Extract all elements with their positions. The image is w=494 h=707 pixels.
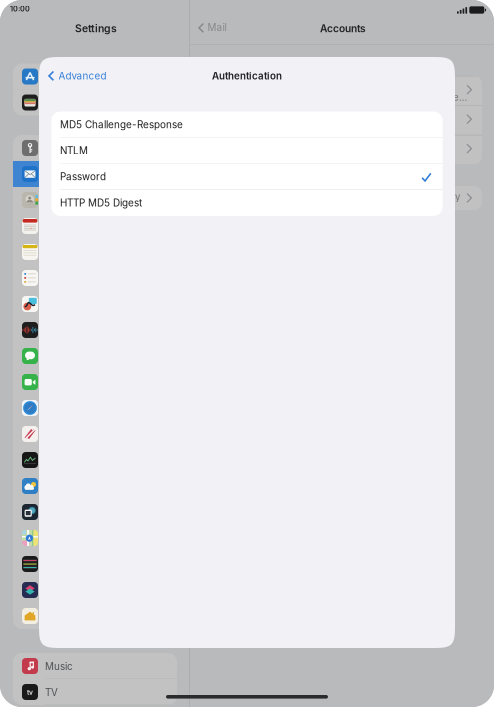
button[interactable]: Contacts <box>13 187 177 213</box>
staticText: Settings <box>75 22 117 35</box>
staticText: NTLM <box>60 145 88 157</box>
button[interactable]: Safari <box>13 395 177 421</box>
staticText: Authentication <box>212 70 282 82</box>
button[interactable] <box>206 105 482 135</box>
button[interactable]: Fitness <box>13 551 177 577</box>
button[interactable]: App Store <box>13 63 177 89</box>
button[interactable]: Notes <box>13 239 177 265</box>
button[interactable]: Advanced <box>44 62 154 90</box>
staticText: tv <box>27 688 33 696</box>
button[interactable]: Reminders <box>13 265 177 291</box>
staticText: Mail <box>207 21 226 33</box>
button[interactable]: Messages <box>13 343 177 369</box>
button[interactable]: Maps <box>13 525 177 551</box>
button[interactable]: Freeform <box>13 291 177 317</box>
button[interactable]: FaceTime <box>13 369 177 395</box>
button[interactable]: MD5 Challenge-Response <box>51 111 442 138</box>
staticText: MD5 Challenge-Response <box>60 119 183 130</box>
staticText: HTTP MD5 Digest <box>60 197 142 209</box>
button[interactable]: e… <box>206 76 482 105</box>
button[interactable]: Translate <box>13 499 177 525</box>
button[interactable]: Weather <box>13 473 177 499</box>
staticText: TV <box>45 686 58 698</box>
button[interactable]: y <box>206 186 482 210</box>
staticText: y <box>455 191 460 203</box>
button[interactable]: News <box>13 421 177 447</box>
button[interactable]: HTTP MD5 Digest <box>51 190 442 216</box>
staticText: Password <box>60 171 106 183</box>
staticText: Accounts <box>320 22 366 35</box>
staticText: 10:00 <box>10 5 30 13</box>
button[interactable]: Mail <box>13 161 177 187</box>
button[interactable]: TV <box>13 679 177 705</box>
staticText: Music <box>45 660 73 672</box>
button[interactable]: NTLM <box>51 138 442 164</box>
button[interactable]: Password <box>51 164 442 190</box>
staticText: e… <box>453 91 467 103</box>
button[interactable]: Voice Memos <box>13 317 177 343</box>
button[interactable]: Music <box>13 653 177 679</box>
button[interactable]: Stocks <box>13 447 177 473</box>
button[interactable]: Calendar <box>13 213 177 239</box>
button[interactable] <box>206 135 482 164</box>
button[interactable]: Shortcuts <box>13 577 177 603</box>
button[interactable]: Wallet <box>13 89 177 115</box>
button[interactable]: Home <box>13 603 177 629</box>
staticText: Advanced <box>58 70 106 82</box>
button[interactable]: Passwords <box>13 135 177 161</box>
